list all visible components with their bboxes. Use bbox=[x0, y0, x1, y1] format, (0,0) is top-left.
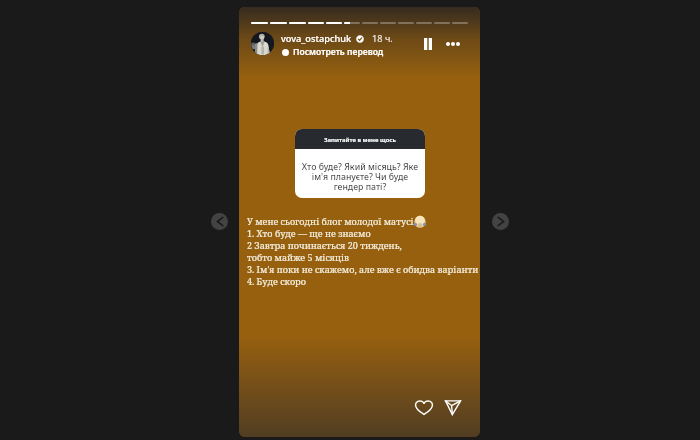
staticText: 18 ч. bbox=[372, 32, 393, 45]
staticText: тобто майже 5 місяців bbox=[247, 251, 349, 263]
staticText: 2 Завтра починається 20 тиждень, bbox=[247, 239, 402, 251]
button[interactable]: Share bbox=[441, 395, 465, 419]
button[interactable]: Next story bbox=[492, 213, 509, 230]
staticText: 4. Буде скоро bbox=[247, 275, 307, 287]
button[interactable]: Посмотреть перевод bbox=[282, 46, 384, 58]
button[interactable]: Pause bbox=[419, 35, 437, 53]
button[interactable]: Previous story bbox=[211, 213, 228, 230]
staticText: Посмотреть перевод bbox=[293, 46, 384, 58]
button[interactable]: More options bbox=[444, 35, 462, 53]
staticText: 1. Хто буде — ще не знаємо bbox=[247, 227, 371, 239]
staticText: У мене сьогодні блог молодої матусі bbox=[247, 215, 414, 227]
button[interactable]: Like bbox=[412, 395, 436, 419]
button[interactable]: Profile photo bbox=[251, 32, 274, 55]
staticText: Запитайте в мене щось bbox=[324, 135, 397, 143]
button[interactable]: vova_ostapchuk bbox=[281, 32, 393, 45]
staticText: Хто буде? Який місяць? Яке ім'я плануєте… bbox=[299, 161, 421, 192]
staticText: vova_ostapchuk bbox=[281, 32, 352, 45]
staticText: 3. Ім'я поки не скажемо, але вже є обидв… bbox=[247, 263, 479, 275]
